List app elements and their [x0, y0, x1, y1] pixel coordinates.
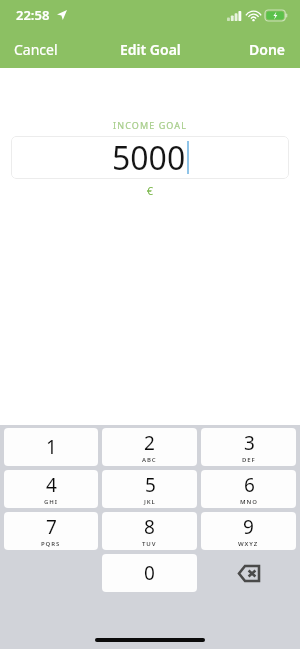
staticText: Done	[249, 40, 286, 59]
button[interactable]: 5	[102, 470, 197, 508]
staticText: 1	[46, 434, 57, 460]
staticText: 2	[144, 430, 155, 456]
staticText: 22:58	[16, 6, 50, 24]
staticText: 7	[46, 514, 57, 540]
button[interactable]: 3	[201, 428, 296, 466]
button[interactable]: 2	[102, 428, 197, 466]
staticText: INCOME GOAL	[0, 119, 300, 131]
staticText: 8	[144, 514, 155, 540]
button[interactable]: Cancel	[0, 32, 72, 67]
staticText: Cancel	[14, 40, 58, 59]
staticText: 5	[145, 472, 156, 498]
button[interactable]: Done	[235, 32, 300, 67]
button[interactable]: 1	[4, 428, 98, 466]
staticText: 4	[46, 472, 57, 498]
staticText: MNO	[240, 498, 258, 506]
staticText: DEF	[242, 456, 256, 464]
button[interactable]: 4	[4, 470, 98, 508]
staticText: WXYZ	[238, 540, 259, 548]
button[interactable]: 7	[4, 512, 98, 550]
staticText: GHI	[44, 498, 58, 506]
button[interactable]: 9	[201, 512, 296, 550]
staticText: 5000	[112, 136, 186, 179]
staticText: ABC	[142, 456, 157, 464]
staticText: 9	[243, 514, 254, 540]
button[interactable]: 8	[102, 512, 197, 550]
button[interactable]: Backspace	[201, 554, 296, 592]
button[interactable]: 5000	[11, 136, 289, 179]
staticText: Edit Goal	[120, 40, 181, 59]
staticText: JKL	[144, 498, 156, 506]
staticText: €	[0, 183, 300, 198]
staticText: 6	[244, 472, 255, 498]
button[interactable]: 0	[102, 554, 197, 592]
staticText: PQRS	[41, 540, 61, 548]
staticText: 0	[144, 560, 155, 586]
staticText: TUV	[142, 540, 157, 548]
staticText: 3	[244, 430, 255, 456]
button[interactable]: 6	[201, 470, 296, 508]
